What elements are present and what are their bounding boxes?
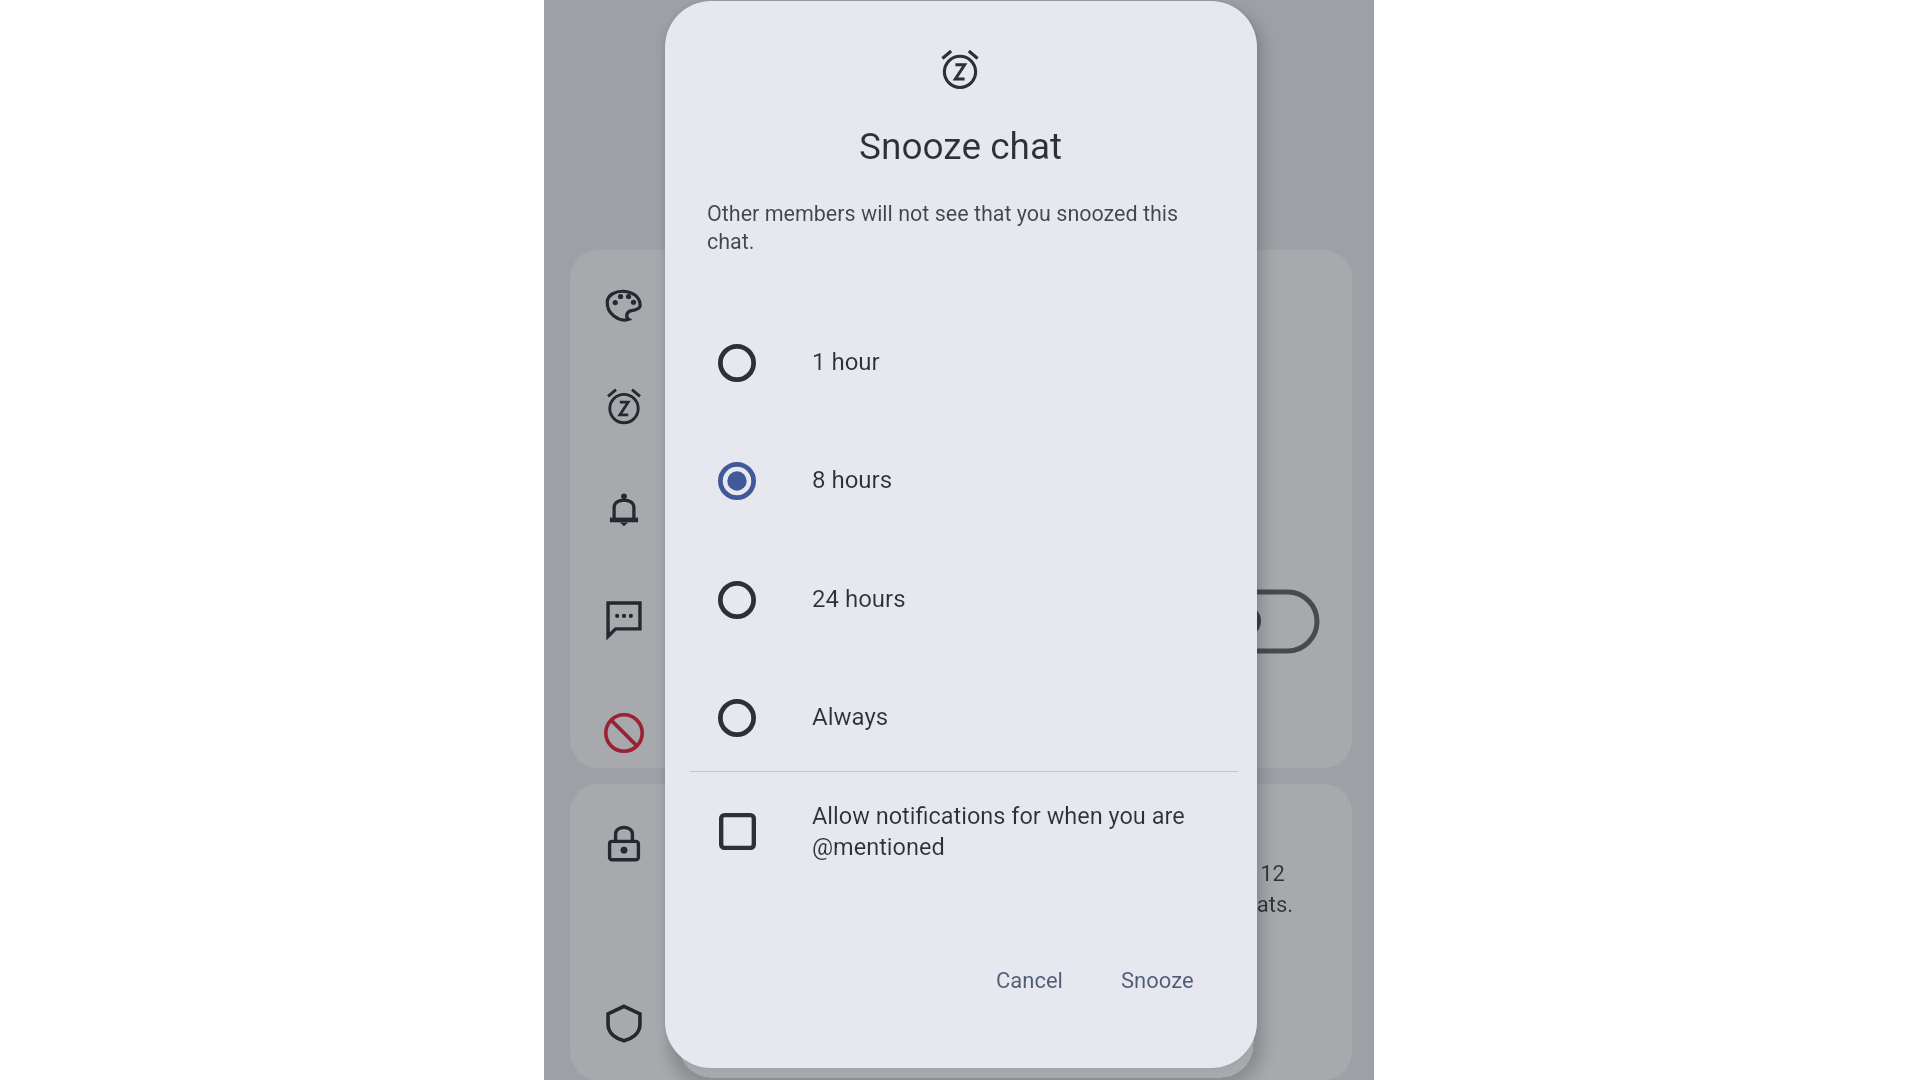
staticText: 1 hour (812, 348, 880, 376)
button[interactable]: 24 hours (665, 560, 1257, 640)
button[interactable]: Snooze (1101, 956, 1214, 1006)
staticText: Cancel (996, 968, 1063, 994)
staticText: Snooze (1121, 968, 1194, 994)
button[interactable]: Snooze chat (570, 358, 1352, 454)
button[interactable]: Cancel (976, 956, 1083, 1006)
staticText: Snooze for all 12 hours in all chats. (1121, 861, 1321, 917)
staticText: 8 hours (812, 466, 893, 494)
staticText: 24 hours (812, 585, 906, 613)
button[interactable]: Allow notifications when mentioned (690, 786, 1238, 881)
staticText: Always (812, 703, 889, 731)
button[interactable]: Block (570, 685, 1352, 781)
button[interactable]: Privacy (570, 795, 1352, 891)
button[interactable]: Always (665, 678, 1257, 758)
staticText: Snooze chat (859, 125, 1063, 168)
button[interactable]: 1 hour (665, 323, 1257, 403)
button[interactable]: Toggle setting (1218, 588, 1322, 656)
button[interactable]: Notifications (570, 463, 1352, 559)
button[interactable]: Messages (570, 571, 1352, 667)
button[interactable]: 8 hours (665, 441, 1257, 521)
other: Allow notifications when mentioned (719, 813, 756, 850)
staticText: Other members will not see that you snoo… (707, 201, 1217, 254)
button[interactable]: Theme (570, 255, 1352, 351)
button[interactable]: Safety (570, 975, 1352, 1071)
staticText: Allow notifications for when you are @me… (812, 802, 1212, 860)
